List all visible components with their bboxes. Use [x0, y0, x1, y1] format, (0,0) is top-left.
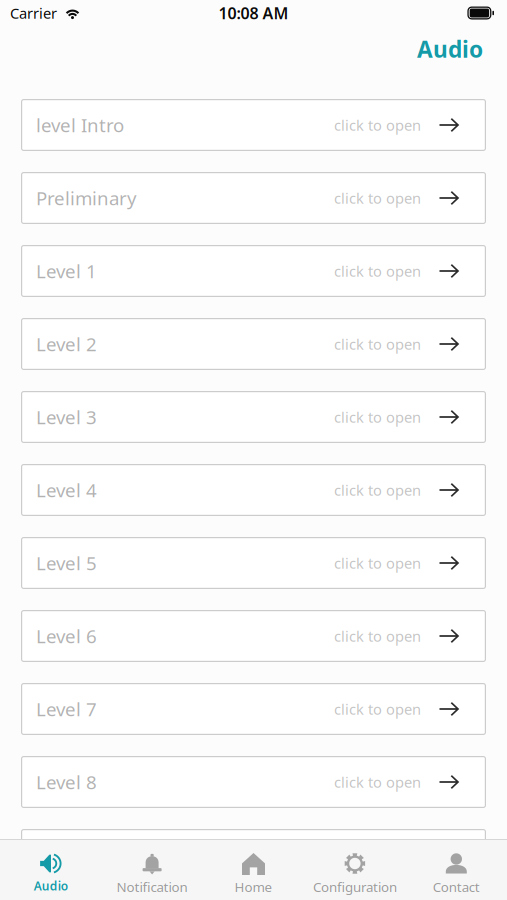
- staticText: Audio: [417, 34, 483, 64]
- staticText: Level 1: [36, 259, 97, 283]
- staticText: Contact: [433, 878, 480, 896]
- button[interactable]: Audio: [0, 839, 101, 900]
- staticText: click to open: [334, 845, 421, 865]
- button[interactable]: Level 3: [21, 391, 486, 443]
- button[interactable]: Level 9: [21, 829, 486, 881]
- button[interactable]: Notification: [101, 839, 203, 900]
- staticText: Level 9: [36, 843, 97, 867]
- button[interactable]: Home: [203, 839, 304, 900]
- staticText: click to open: [334, 626, 421, 646]
- button[interactable]: Level 7: [21, 683, 486, 735]
- staticText: Home: [234, 878, 272, 896]
- button[interactable]: Level 8: [21, 756, 486, 808]
- button[interactable]: Level 2: [21, 318, 486, 370]
- staticText: Carrier: [10, 3, 57, 23]
- staticText: click to open: [334, 261, 421, 281]
- button[interactable]: Level 4: [21, 464, 486, 516]
- staticText: Level 8: [36, 770, 97, 794]
- staticText: Configuration: [313, 878, 397, 896]
- staticText: click to open: [334, 407, 421, 427]
- staticText: click to open: [334, 480, 421, 500]
- staticText: click to open: [334, 553, 421, 573]
- staticText: click to open: [334, 334, 421, 354]
- button[interactable]: Level 6: [21, 610, 486, 662]
- staticText: Audio: [34, 878, 68, 894]
- staticText: Level 3: [36, 405, 97, 429]
- staticText: click to open: [334, 115, 421, 135]
- button[interactable]: level Intro: [21, 99, 486, 151]
- staticText: click to open: [334, 699, 421, 719]
- staticText: Level 5: [36, 551, 97, 575]
- button[interactable]: Preliminary: [21, 172, 486, 224]
- button[interactable]: Contact: [406, 839, 507, 900]
- button[interactable]: Level 1: [21, 245, 486, 297]
- staticText: click to open: [334, 772, 421, 792]
- staticText: Notification: [117, 878, 188, 896]
- button[interactable]: Level 5: [21, 537, 486, 589]
- staticText: Level 7: [36, 697, 97, 721]
- staticText: Level 6: [36, 624, 97, 648]
- button[interactable]: Audio: [417, 34, 483, 64]
- staticText: Preliminary: [36, 186, 137, 210]
- staticText: Level 4: [36, 478, 97, 502]
- button[interactable]: Configuration: [304, 839, 406, 900]
- staticText: 10:08 AM: [218, 2, 288, 24]
- staticText: click to open: [334, 188, 421, 208]
- staticText: level Intro: [36, 113, 124, 137]
- staticText: Level 2: [36, 332, 97, 356]
